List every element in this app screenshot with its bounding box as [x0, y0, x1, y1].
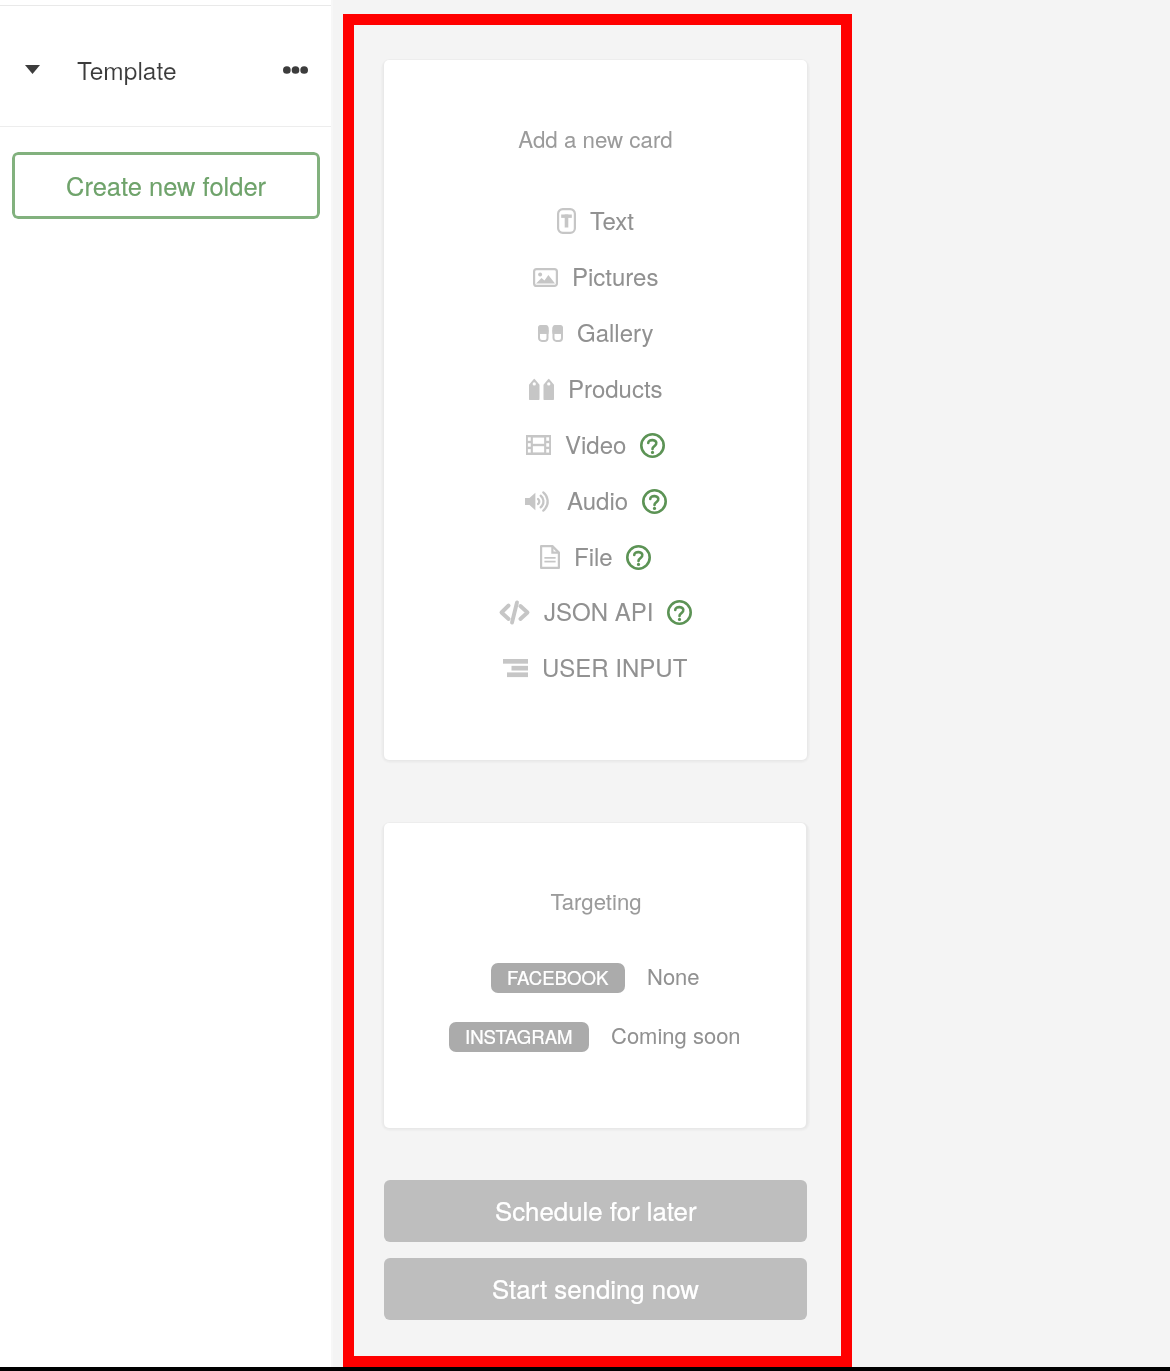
button[interactable]: USER INPUT	[503, 651, 688, 685]
staticText: INSTAGRAM	[465, 1023, 573, 1050]
button[interactable]: Start sending now	[384, 1258, 807, 1320]
staticText: Create new folder	[66, 167, 267, 204]
staticText: Start sending now	[492, 1269, 699, 1306]
staticText: Pictures	[572, 258, 659, 292]
button[interactable]: Video	[526, 428, 665, 462]
staticText: Gallery	[577, 314, 654, 348]
staticText: Text	[590, 202, 634, 236]
staticText: Template	[77, 52, 177, 87]
staticText: Audio	[567, 482, 629, 516]
button[interactable]: Text	[557, 204, 634, 238]
button[interactable]: Template	[0, 5, 331, 134]
button[interactable]: Pictures	[533, 260, 659, 294]
staticText: None	[647, 960, 700, 992]
staticText: File	[574, 538, 613, 572]
button[interactable]: Gallery	[538, 316, 654, 350]
button[interactable]: More options	[267, 42, 323, 98]
staticText: Schedule for later	[495, 1191, 697, 1228]
staticText: Targeting	[550, 885, 642, 917]
staticText: Products	[568, 370, 663, 404]
staticText: JSON API	[544, 593, 654, 627]
staticText: Coming soon	[611, 1019, 741, 1051]
staticText: FACEBOOK	[507, 964, 609, 991]
staticText: USER INPUT	[542, 649, 688, 683]
button[interactable]: INSTAGRAM	[465, 1022, 573, 1052]
button[interactable]: Schedule for later	[384, 1180, 807, 1242]
button[interactable]: JSON API	[499, 595, 692, 629]
staticText: Video	[565, 426, 627, 460]
button[interactable]: File	[540, 540, 651, 574]
staticText: Add a new card	[518, 122, 673, 154]
button[interactable]: Create new folder	[12, 152, 320, 219]
button[interactable]: Audio	[525, 484, 667, 518]
button[interactable]: FACEBOOK	[507, 963, 609, 993]
button[interactable]: Products	[529, 372, 663, 406]
